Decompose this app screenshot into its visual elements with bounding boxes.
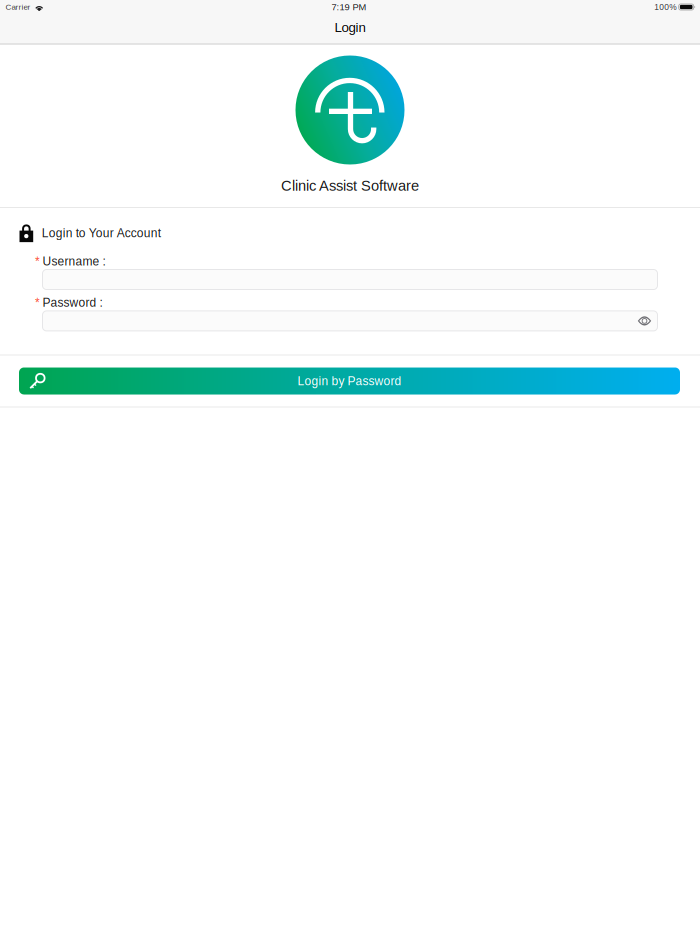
staticText: Username : [42,255,105,268]
button[interactable]: Login by Password [19,367,680,394]
staticText: Clinic Assist Software [281,177,419,194]
staticText: Carrier [5,2,30,11]
staticText: * [35,296,40,309]
button[interactable]: Show password [631,311,657,331]
staticText: Login by Password [297,374,401,388]
staticText: Login [334,20,365,35]
staticText: 7:19 PM [332,2,367,12]
staticText: Login to Your Account [42,226,161,240]
staticText: Password : [42,296,102,309]
staticText: 100% [654,2,676,12]
staticText: * [35,255,40,268]
